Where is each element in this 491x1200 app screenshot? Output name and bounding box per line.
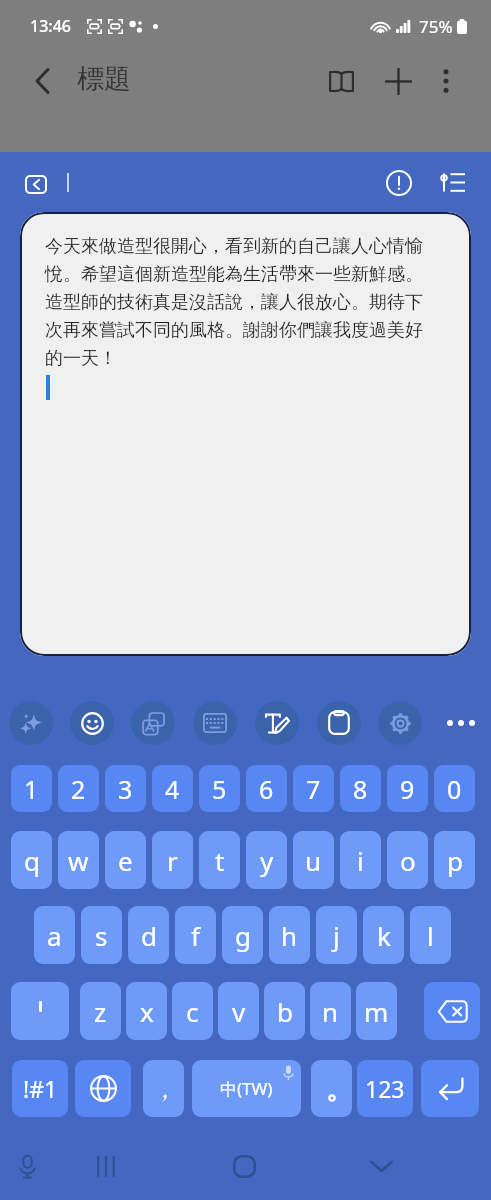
staticText: !#1 [23, 1073, 58, 1104]
button[interactable]: 3 [105, 765, 146, 812]
button[interactable]: t [199, 831, 240, 889]
staticText: 75% [419, 15, 453, 38]
button[interactable]: y [246, 831, 287, 889]
staticText: h [281, 918, 298, 953]
staticText: s [95, 918, 108, 953]
button[interactable]: Recent apps [83, 1144, 131, 1188]
staticText: 3 [118, 772, 133, 806]
staticText: b [277, 994, 293, 1029]
button[interactable]: j [316, 906, 357, 964]
button[interactable]: u [293, 831, 334, 889]
button[interactable]: 123 [357, 1060, 413, 1117]
staticText: p [447, 843, 463, 878]
button[interactable]: a [34, 906, 75, 964]
button[interactable]: p [434, 831, 475, 889]
button[interactable]: l [410, 906, 451, 964]
button[interactable]: 6 [246, 765, 287, 812]
button[interactable]: h [269, 906, 310, 964]
staticText: f [191, 918, 200, 953]
button[interactable]: Keyboard settings [378, 701, 422, 745]
button[interactable]: q [11, 831, 52, 889]
staticText: j [333, 918, 340, 953]
button[interactable]: Emoji [70, 701, 114, 745]
button[interactable] [143, 1060, 184, 1117]
button[interactable]: i [340, 831, 381, 889]
button[interactable]: 中(TW) [192, 1060, 301, 1117]
button[interactable]: e [105, 831, 146, 889]
staticText: m [364, 994, 389, 1029]
staticText: e [118, 843, 133, 878]
button[interactable]: Clipboard [317, 701, 361, 745]
button[interactable]: Handwriting [255, 701, 299, 745]
button[interactable]: Change language [75, 1060, 131, 1117]
button[interactable]: d [128, 906, 169, 964]
staticText: d [141, 918, 157, 953]
button[interactable]: w [58, 831, 99, 889]
button[interactable] [11, 982, 69, 1040]
button[interactable]: f [175, 906, 216, 964]
button[interactable]: Home [220, 1144, 268, 1188]
button[interactable]: Enter [421, 1060, 479, 1117]
button[interactable]: Keyboard layout [193, 701, 237, 745]
button[interactable]: m [356, 982, 397, 1040]
button[interactable]: Back [20, 59, 64, 103]
staticText: r [167, 843, 178, 878]
button[interactable]: More options [424, 59, 468, 103]
staticText: n [322, 994, 339, 1029]
staticText: i [357, 843, 364, 878]
button[interactable]: 2 [58, 765, 99, 812]
staticText: v [232, 994, 246, 1029]
button[interactable]: x [126, 982, 167, 1040]
button[interactable]: g [222, 906, 263, 964]
button[interactable]: k [363, 906, 404, 964]
staticText: o [400, 843, 416, 878]
button[interactable]: Text formatting [431, 161, 474, 204]
button[interactable]: n [310, 982, 351, 1040]
staticText: 0 [447, 772, 462, 806]
button[interactable]: o [387, 831, 428, 889]
button[interactable]: r [152, 831, 193, 889]
staticText: y [260, 843, 274, 878]
staticText: x [140, 994, 154, 1029]
staticText: q [24, 843, 40, 878]
button[interactable]: 8 [340, 765, 381, 812]
staticText: 123 [365, 1073, 405, 1104]
button[interactable]: Add [376, 59, 420, 103]
button[interactable]: z [80, 982, 121, 1040]
staticText: 今天來做造型很開心，看到新的自己讓人心情愉悅。希望這個新造型能為生活帶來一些新鮮… [45, 235, 431, 369]
button[interactable]: Voice input [3, 1144, 51, 1188]
staticText: 8 [353, 772, 368, 806]
button[interactable]: More options [439, 701, 483, 745]
button[interactable]: !#1 [12, 1060, 68, 1117]
staticText: g [235, 918, 251, 953]
button[interactable]: Hide keyboard [357, 1144, 405, 1188]
button[interactable]: v [218, 982, 259, 1040]
staticText: 4 [165, 772, 180, 806]
button[interactable]: 7 [293, 765, 334, 812]
button[interactable]: Collapse toolbar [14, 162, 58, 206]
button[interactable]: Suggestions [9, 701, 53, 745]
button[interactable] [311, 1060, 352, 1117]
staticText: 1 [24, 772, 39, 806]
staticText: 9 [400, 772, 415, 806]
button[interactable]: Info [377, 161, 420, 204]
button[interactable]: 4 [152, 765, 193, 812]
button[interactable]: b [264, 982, 305, 1040]
button[interactable]: 0 [434, 765, 475, 812]
button[interactable]: 1 [11, 765, 52, 812]
button[interactable]: Translate [131, 701, 175, 745]
button[interactable]: 5 [199, 765, 240, 812]
staticText: 7 [306, 772, 321, 806]
staticText: k [377, 918, 391, 953]
button[interactable]: c [172, 982, 213, 1040]
button[interactable]: Backspace [424, 982, 480, 1040]
staticText: 6 [259, 772, 274, 806]
button[interactable]: s [81, 906, 122, 964]
staticText: u [305, 843, 322, 878]
staticText: 標題 [77, 62, 131, 96]
button[interactable]: 9 [387, 765, 428, 812]
staticText: w [68, 843, 89, 878]
button[interactable]: Reading mode [319, 59, 363, 103]
staticText: t [215, 843, 225, 878]
staticText: l [427, 918, 434, 953]
